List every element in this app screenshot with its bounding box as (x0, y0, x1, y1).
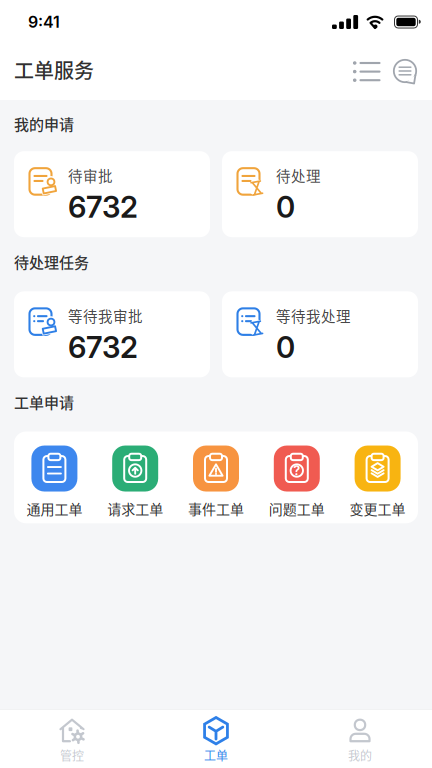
button[interactable]: 事件工单 (176, 445, 256, 518)
button[interactable]: 变更工单 (337, 445, 418, 518)
staticText: 工单申请 (14, 391, 74, 413)
button[interactable]: 工单 (144, 717, 288, 764)
button[interactable]: 待处理 (222, 151, 418, 237)
staticText: 工单 (204, 747, 228, 764)
button[interactable]: 消息 (381, 58, 419, 85)
button[interactable]: 待审批 (14, 151, 210, 237)
staticText: 待处理任务 (14, 251, 89, 272)
staticText: 我的 (348, 747, 372, 764)
staticText: 0 (276, 330, 295, 365)
staticText: 6732 (68, 190, 138, 224)
button[interactable]: 我的 (288, 717, 432, 764)
staticText: 0 (276, 190, 295, 224)
button[interactable]: 通用工单 (14, 445, 95, 518)
staticText: 通用工单 (26, 498, 82, 518)
staticText: 工单服务 (14, 55, 94, 84)
staticText: 变更工单 (350, 498, 406, 518)
staticText: 事件工单 (188, 498, 244, 518)
button[interactable]: 管控 (0, 717, 144, 764)
button[interactable]: 请求工单 (95, 445, 176, 518)
button[interactable]: 列表 (353, 60, 381, 84)
staticText: 等待我审批 (68, 305, 143, 326)
staticText: ? (293, 463, 300, 478)
button[interactable]: ? (256, 445, 337, 518)
staticText: 9:41 (28, 13, 60, 31)
staticText: 待审批 (68, 165, 113, 186)
staticText: 请求工单 (107, 498, 163, 518)
staticText: 6732 (68, 330, 138, 365)
staticText: 等待我处理 (276, 305, 351, 326)
button[interactable]: 等待我审批 (14, 291, 210, 377)
staticText: 问题工单 (269, 498, 325, 518)
button[interactable]: 等待我处理 (222, 291, 418, 377)
staticText: 我的申请 (14, 113, 74, 134)
staticText: 管控 (60, 747, 84, 764)
staticText: 待处理 (276, 165, 321, 186)
